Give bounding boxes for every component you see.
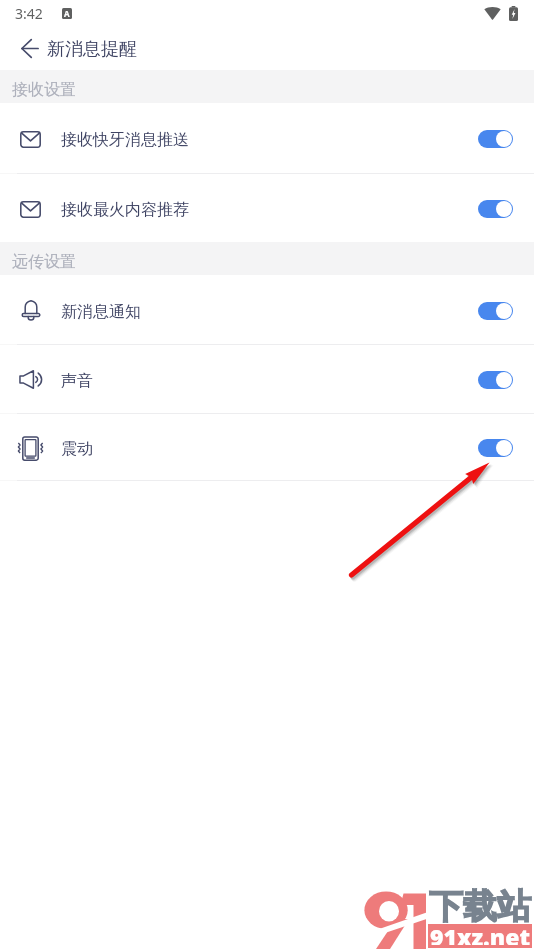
- staticText: 接收最火内容推荐: [61, 200, 189, 220]
- staticText: 新消息通知: [61, 302, 141, 322]
- button[interactable]: 震动: [0, 414, 534, 480]
- button[interactable]: 新消息通知: [0, 275, 534, 344]
- button[interactable]: 开关: [478, 200, 513, 218]
- staticText: 新消息提醒: [47, 38, 137, 61]
- staticText: 3:42: [15, 4, 43, 23]
- button[interactable]: 开关: [478, 371, 513, 389]
- staticText: 声音: [61, 371, 93, 391]
- button[interactable]: 开关: [478, 130, 513, 148]
- staticText: 接收设置: [12, 80, 76, 100]
- button[interactable]: 返回: [8, 26, 52, 70]
- staticText: 震动: [61, 439, 93, 459]
- button[interactable]: 开关: [478, 302, 513, 320]
- staticText: 接收快牙消息推送: [61, 130, 189, 150]
- staticText: 远传设置: [12, 252, 76, 272]
- button[interactable]: 声音: [0, 345, 534, 413]
- staticText: 91xz.net: [430, 921, 530, 945]
- button[interactable]: 接收最火内容推荐: [0, 174, 534, 242]
- button[interactable]: 接收快牙消息推送: [0, 103, 534, 173]
- staticText: A: [64, 8, 70, 19]
- button[interactable]: 开关: [478, 439, 513, 457]
- staticText: 下载站: [429, 885, 531, 928]
